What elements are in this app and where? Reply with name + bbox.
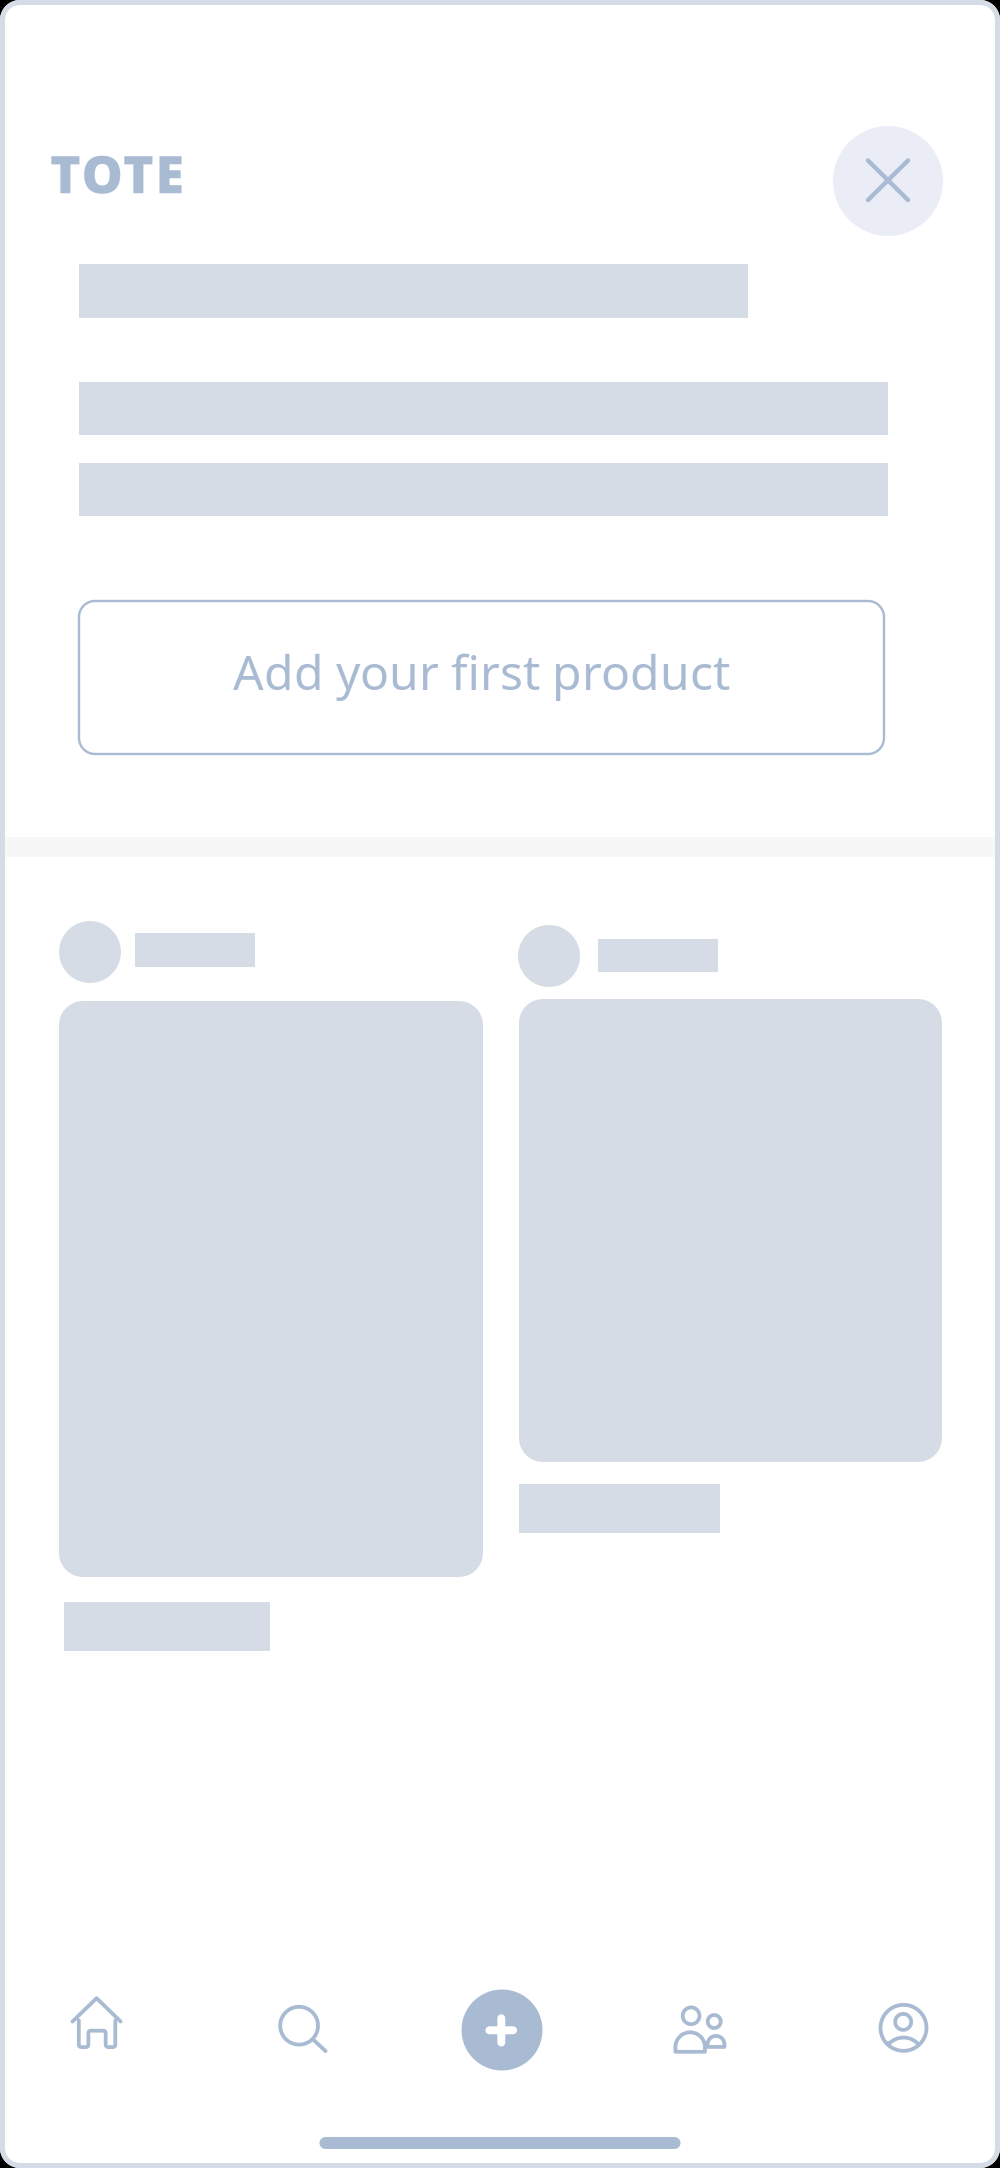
staticText: TOTE (50, 138, 184, 208)
button[interactable]: Home (70, 1996, 123, 2049)
button[interactable] (519, 925, 942, 1463)
button[interactable]: Search (272, 1999, 325, 2052)
button[interactable] (59, 920, 483, 1571)
button[interactable]: Friends (674, 2000, 727, 2053)
staticText: Add your first product (233, 640, 730, 703)
button[interactable]: Close (833, 126, 943, 236)
button[interactable]: Create (461, 1989, 542, 2070)
button[interactable]: Add your first product (79, 601, 884, 754)
button[interactable]: Profile (876, 2001, 929, 2054)
button[interactable]: TOTE (50, 143, 250, 203)
